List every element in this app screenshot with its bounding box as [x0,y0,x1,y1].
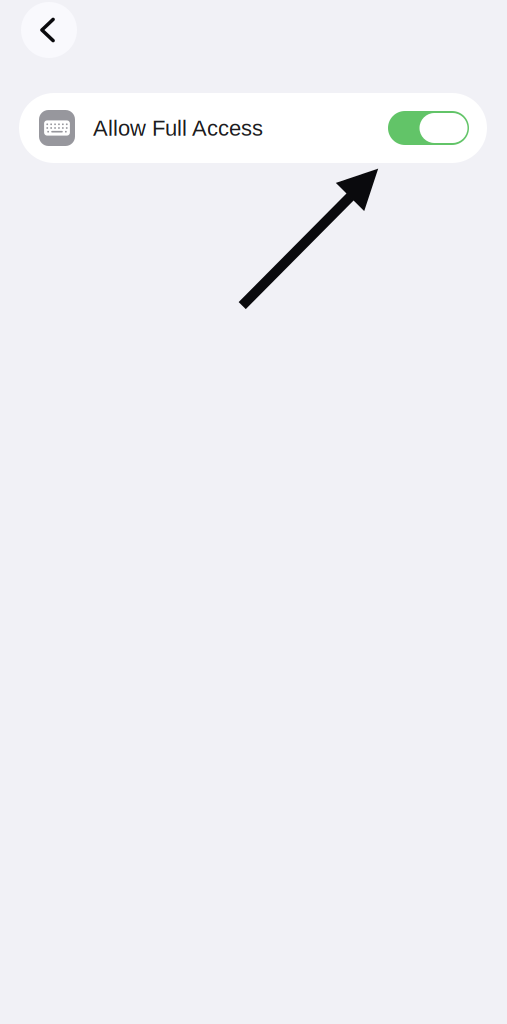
button[interactable]: Allow Full Access [19,93,487,163]
staticText: Allow Full Access [93,116,263,140]
button[interactable]: Back [21,2,77,58]
